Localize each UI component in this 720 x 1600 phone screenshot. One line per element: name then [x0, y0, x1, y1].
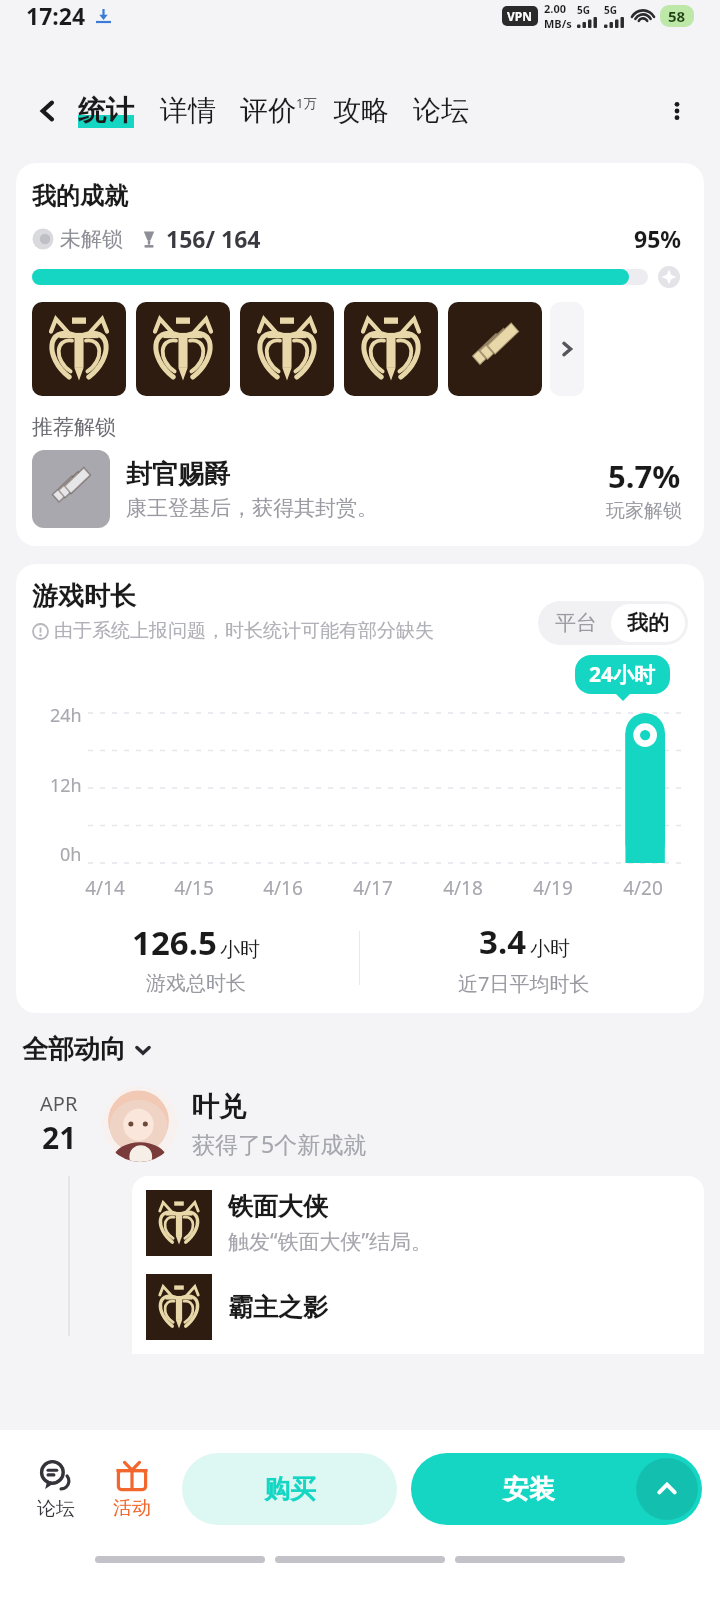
button[interactable]: Expand [636, 1458, 698, 1520]
button[interactable]: Achievement badge [448, 302, 542, 396]
staticText: MB/s [544, 16, 572, 31]
staticText: 安装 [503, 1473, 555, 1506]
staticText: 推荐解锁 [32, 414, 116, 440]
staticText: 21 [42, 1117, 77, 1158]
staticText: 活动 [113, 1496, 151, 1520]
button[interactable]: Achievement badge [240, 302, 334, 396]
staticText: 24h [50, 703, 82, 728]
button[interactable]: 评价 [240, 93, 317, 128]
staticText: 游戏总时长 [146, 971, 246, 996]
button[interactable]: 详情 [160, 93, 216, 128]
button[interactable]: 铁面大侠 [132, 1176, 704, 1354]
staticText: 全部动向 [22, 1033, 126, 1066]
button[interactable]: 活动 [94, 1455, 170, 1524]
staticText: 我的成就 [32, 181, 128, 211]
staticText: APR [40, 1090, 78, 1117]
staticText: 2.00 [544, 1, 566, 16]
button[interactable]: More achievements [550, 302, 584, 396]
staticText: 4/14 [85, 875, 125, 901]
button[interactable]: 我的 [611, 604, 685, 642]
staticText: 玩家解锁 [606, 499, 682, 523]
staticText: 58 [668, 6, 686, 26]
staticText: 5G [604, 3, 617, 17]
staticText: 4/18 [443, 875, 483, 901]
staticText: 霸主之影 [228, 1292, 328, 1323]
staticText: VPN [507, 8, 533, 24]
button[interactable]: 封官赐爵 [32, 450, 694, 528]
staticText: 购买 [264, 1473, 316, 1506]
staticText: 触发“铁面大侠”结局。 [228, 1227, 433, 1256]
staticText: 95% [634, 223, 682, 254]
staticText: 未解锁 [60, 226, 123, 252]
staticText: 论坛 [37, 1497, 75, 1521]
staticText: 3.4 [479, 919, 527, 964]
staticText: 攻略 [333, 93, 389, 128]
staticText: 126.5 [132, 920, 217, 965]
staticText: 小时 [530, 936, 570, 961]
staticText: 1万 [296, 94, 317, 112]
staticText: 游戏时长 [32, 580, 136, 613]
staticText: 小时 [220, 937, 260, 962]
button[interactable]: Back [26, 89, 70, 133]
staticText: 论坛 [413, 93, 469, 128]
button[interactable]: Achievement badge [344, 302, 438, 396]
staticText: 4/15 [174, 875, 214, 901]
staticText: 4/17 [353, 875, 393, 901]
button[interactable]: More options [656, 90, 698, 132]
button[interactable]: 全部动向 [22, 1033, 152, 1066]
button[interactable]: 统计 [76, 93, 136, 128]
staticText: 叶兑 [192, 1090, 246, 1124]
staticText: 我的 [627, 610, 669, 636]
staticText: 封官赐爵 [126, 458, 230, 491]
staticText: 12h [50, 773, 82, 798]
staticText: 铁面大侠 [228, 1191, 328, 1222]
staticText: 5.7% [608, 455, 681, 497]
staticText: 近7日平均时长 [458, 970, 590, 997]
button[interactable]: 论坛 [18, 1454, 94, 1525]
staticText: 获得了5个新成就 [192, 1128, 367, 1159]
staticText: 康王登基后，获得其封赏。 [126, 495, 378, 521]
staticText: 24小时 [589, 660, 656, 689]
staticText: 5G [577, 3, 590, 17]
staticText: 评价 [240, 93, 296, 128]
staticText: 156/ 164 [166, 223, 261, 254]
staticText: 17:24 [26, 0, 86, 31]
button[interactable]: 安装 [411, 1453, 702, 1525]
button[interactable]: Achievement badge [32, 302, 126, 396]
staticText: 平台 [555, 610, 597, 636]
button[interactable]: Achievement badge [136, 302, 230, 396]
staticText: 统计 [78, 93, 134, 128]
button[interactable]: 平台 [541, 604, 611, 642]
button[interactable]: 论坛 [413, 93, 469, 128]
button[interactable]: 攻略 [333, 93, 389, 128]
staticText: 4/20 [623, 875, 663, 901]
staticText: 详情 [160, 93, 216, 128]
staticText: 由于系统上报问题，时长统计可能有部分缺失 [54, 619, 434, 643]
button[interactable]: 购买 [182, 1453, 397, 1525]
staticText: 0h [60, 842, 82, 867]
staticText: 4/16 [263, 875, 303, 901]
staticText: 4/19 [533, 875, 573, 901]
